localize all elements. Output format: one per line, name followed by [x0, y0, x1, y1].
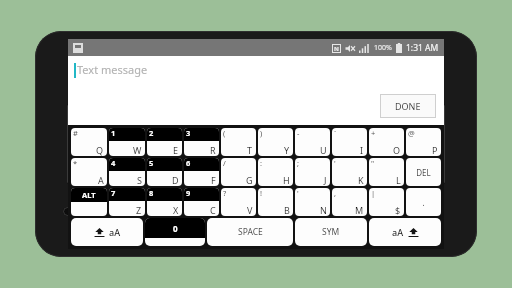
staticText: aA: [392, 226, 404, 238]
staticText: 7: [111, 188, 116, 198]
button[interactable]: :: [258, 158, 293, 186]
staticText: L: [396, 174, 401, 186]
staticText: H: [283, 174, 290, 186]
staticText: I: [360, 144, 364, 156]
staticText: SPACE: [238, 226, 263, 238]
staticText: F: [211, 174, 216, 186]
staticText: R: [210, 144, 216, 156]
button[interactable]: 2: [147, 128, 182, 156]
staticText: DONE: [395, 100, 421, 112]
button[interactable]: aA: [71, 218, 143, 246]
staticText: 6: [186, 158, 191, 168]
button[interactable]: 1: [109, 128, 145, 156]
staticText: N: [320, 204, 327, 216]
staticText: V: [247, 204, 253, 216]
staticText: :: [260, 158, 263, 168]
staticText: 1:31 AM: [406, 42, 439, 54]
button[interactable]: DEL: [406, 158, 441, 186]
button[interactable]: aA: [369, 218, 441, 246]
button[interactable]: 9: [184, 188, 219, 216]
staticText: J: [324, 174, 327, 186]
staticText: ?: [223, 188, 227, 198]
button[interactable]: @: [406, 128, 441, 156]
button[interactable]: ?: [221, 188, 256, 216]
staticText: 2: [149, 128, 154, 138]
staticText: S: [137, 174, 142, 186]
staticText: ': [334, 158, 336, 168]
button[interactable]: +: [369, 128, 404, 156]
staticText: Text message: [77, 62, 148, 77]
staticText: E: [173, 144, 179, 156]
staticText: B: [284, 204, 290, 216]
staticText: Y: [284, 144, 290, 156]
button[interactable]: /: [221, 158, 256, 186]
button[interactable]: *: [71, 158, 107, 186]
staticText: SYM: [322, 226, 340, 238]
button[interactable]: 4: [109, 158, 145, 186]
staticText: +: [371, 128, 376, 138]
staticText: .: [422, 197, 425, 208]
button[interactable]: 0: [145, 218, 205, 246]
button[interactable]: ;: [295, 158, 330, 186]
button[interactable]: 5: [147, 158, 182, 186]
staticText: O: [393, 144, 401, 156]
button[interactable]: ): [258, 128, 293, 156]
staticText: G: [246, 174, 253, 186]
staticText: ": [371, 158, 375, 168]
staticText: #: [73, 128, 78, 138]
staticText: 1: [111, 128, 116, 138]
button[interactable]: `: [332, 128, 367, 156]
button[interactable]: 8: [147, 188, 182, 216]
button[interactable]: (: [221, 128, 256, 156]
staticText: |: [371, 188, 376, 198]
button[interactable]: #: [71, 128, 107, 156]
button[interactable]: 3: [184, 128, 219, 156]
button[interactable]: DONE: [380, 94, 436, 118]
button[interactable]: -: [295, 128, 330, 156]
staticText: 4: [111, 158, 116, 168]
staticText: 8: [149, 188, 154, 198]
button[interactable]: 7: [109, 188, 145, 216]
button[interactable]: 6: [184, 158, 219, 186]
staticText: D: [172, 174, 179, 186]
staticText: !: [260, 188, 263, 198]
button[interactable]: ': [332, 158, 367, 186]
button[interactable]: |: [369, 188, 404, 216]
staticText: 100%: [374, 43, 392, 53]
button[interactable]: !: [258, 188, 293, 216]
staticText: 0: [173, 223, 178, 234]
button[interactable]: ": [369, 158, 404, 186]
staticText: ': [297, 188, 299, 198]
staticText: 9: [186, 188, 191, 198]
staticText: ALT: [82, 190, 96, 200]
staticText: A: [98, 174, 104, 186]
staticText: C: [210, 204, 216, 216]
staticText: W: [133, 144, 142, 156]
staticText: N: [334, 45, 339, 53]
staticText: K: [358, 174, 364, 186]
staticText: ;: [297, 158, 300, 168]
staticText: P: [432, 144, 438, 156]
staticText: T: [247, 144, 253, 156]
staticText: -: [297, 128, 300, 138]
button[interactable]: ': [295, 188, 330, 216]
staticText: $: [395, 204, 401, 216]
button[interactable]: SYM: [295, 218, 367, 246]
staticText: /: [223, 158, 226, 168]
button[interactable]: SPACE: [207, 218, 293, 246]
staticText: X: [173, 204, 179, 216]
button[interactable]: ,: [332, 188, 367, 216]
staticText: 5: [149, 158, 154, 168]
staticText: ,: [334, 188, 337, 198]
staticText: Q: [96, 144, 104, 156]
staticText: `: [334, 128, 337, 138]
button[interactable]: ALT: [71, 188, 107, 216]
staticText: Z: [136, 204, 142, 216]
staticText: M: [355, 204, 364, 216]
staticText: aA: [109, 226, 121, 238]
button[interactable]: .: [406, 188, 441, 216]
staticText: (: [223, 128, 226, 138]
staticText: *: [73, 158, 78, 168]
staticText: 3: [186, 128, 191, 138]
staticText: ): [260, 128, 263, 138]
